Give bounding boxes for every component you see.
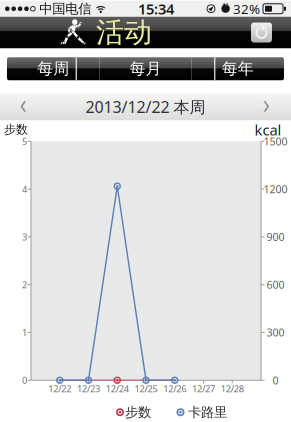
staticText: 每周 xyxy=(37,59,69,79)
staticText: 0 xyxy=(22,374,27,386)
staticText: 12/22 xyxy=(48,383,71,395)
staticText: 中国电信 xyxy=(39,1,91,17)
staticText: 12/23 xyxy=(77,383,100,395)
staticText: 卡路里 xyxy=(188,404,227,420)
staticText: 步数 xyxy=(125,404,151,420)
staticText: 3 xyxy=(22,231,27,243)
staticText: 600 xyxy=(266,278,284,292)
staticText: 12/26 xyxy=(163,383,186,395)
staticText: 1200 xyxy=(263,182,287,196)
button[interactable]: Next week xyxy=(243,93,291,120)
staticText: 1 xyxy=(22,326,27,339)
staticText: kcal xyxy=(254,120,281,139)
button[interactable]: 每周 xyxy=(7,57,99,80)
staticText: 12/28 xyxy=(221,383,244,395)
staticText: 300 xyxy=(266,325,284,340)
staticText: 15:34 xyxy=(138,0,174,18)
staticText: 5 xyxy=(22,135,27,147)
staticText: 活动 xyxy=(96,15,152,50)
staticText: 12/27 xyxy=(192,383,215,395)
staticText: 12/24 xyxy=(106,383,129,395)
staticText: 每年 xyxy=(222,59,254,79)
staticText: 2 xyxy=(22,278,27,291)
staticText: 900 xyxy=(266,230,284,244)
button[interactable]: Previous week xyxy=(0,93,48,120)
staticText: 12/25 xyxy=(134,383,157,395)
staticText: 0 xyxy=(272,373,278,387)
staticText: 1500 xyxy=(263,134,287,148)
staticText: 4 xyxy=(22,183,27,195)
button[interactable]: 每年 xyxy=(192,57,284,80)
staticText: 步数 xyxy=(4,122,28,137)
button[interactable]: 每月 xyxy=(99,57,192,80)
button[interactable]: Refresh xyxy=(251,22,272,42)
staticText: 2013/12/22 本周 xyxy=(85,96,205,117)
staticText: 每月 xyxy=(129,59,161,79)
staticText: 32% xyxy=(233,0,260,18)
